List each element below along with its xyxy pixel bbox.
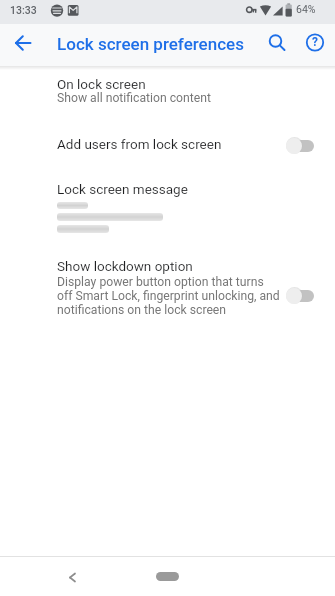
staticText: ?	[312, 35, 318, 49]
button[interactable]: Show lockdown option	[0, 252, 335, 330]
button[interactable]	[156, 572, 179, 581]
staticText: Add users from lock screen	[57, 136, 222, 152]
button[interactable]	[287, 140, 314, 152]
staticText: Show lockdown option	[57, 258, 193, 274]
button[interactable]	[261, 26, 299, 64]
staticText: Lock screen preferences	[57, 34, 245, 54]
button[interactable]	[287, 290, 314, 302]
staticText: Display power button option that turns o…	[57, 275, 280, 317]
button[interactable]: ?	[297, 26, 333, 62]
button[interactable]: On lock screen	[0, 72, 335, 114]
staticText: On lock screen	[57, 76, 146, 92]
button[interactable]: Add users from lock screen	[0, 126, 335, 164]
button[interactable]	[58, 563, 86, 591]
button[interactable]: Lock screen message	[0, 172, 335, 248]
staticText: Show all notification content	[57, 91, 211, 105]
button[interactable]	[7, 27, 39, 59]
staticText: Lock screen message	[57, 181, 188, 197]
staticText: 13:33	[10, 4, 37, 16]
staticText: 64%	[296, 3, 316, 15]
